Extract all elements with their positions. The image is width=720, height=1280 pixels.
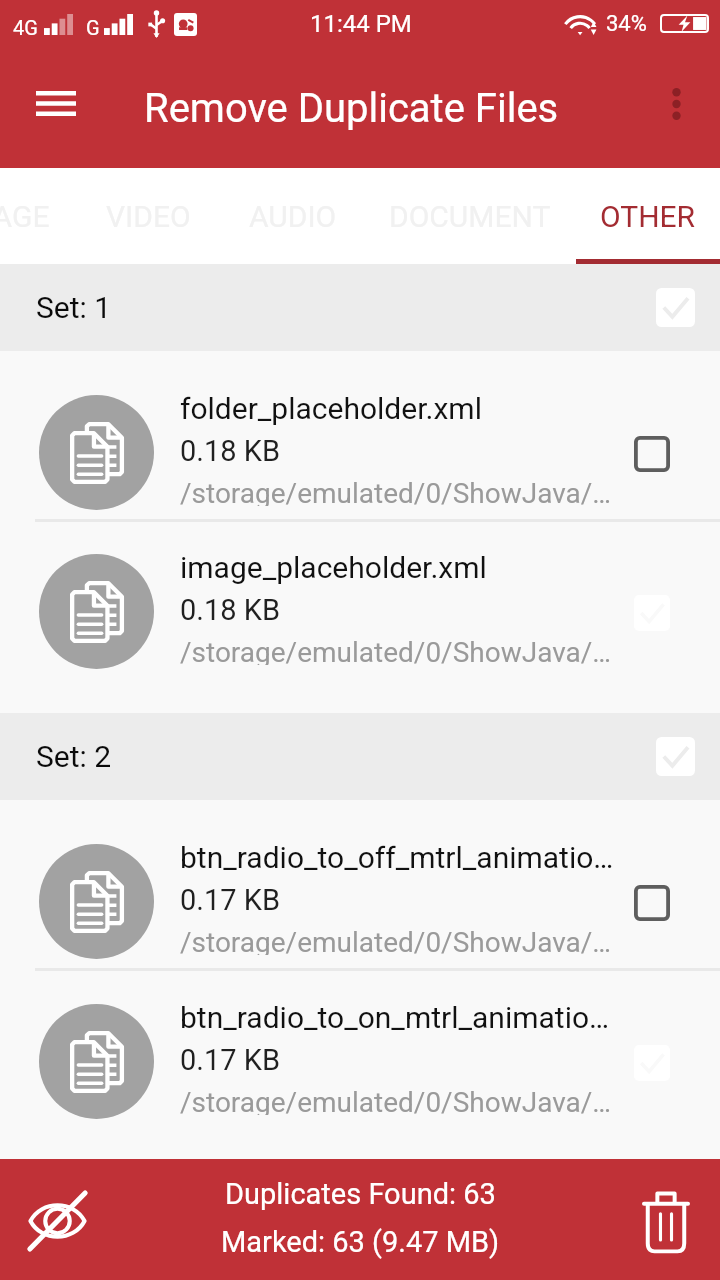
staticText: Set: 2 — [36, 739, 112, 774]
button[interactable]: Open navigation menu — [20, 52, 92, 168]
button[interactable]: Delete — [610, 1159, 715, 1280]
button[interactable]: Set: 2 — [0, 713, 720, 800]
staticText: /storage/emulated/0/ShowJava/… — [180, 636, 612, 665]
staticText: 0.17 KB — [180, 883, 280, 917]
staticText: Duplicates Found: 63 — [225, 1177, 496, 1211]
staticText: 34% — [606, 11, 647, 37]
staticText: OTHER — [600, 199, 696, 234]
staticText: DOCUMENT — [389, 199, 551, 234]
button[interactable]: image_placeholder.xml — [0, 554, 720, 669]
button[interactable]: btn_radio_to_off_mtrl_animatio… — [0, 844, 720, 959]
staticText: image_placeholder.xml — [180, 550, 487, 585]
button[interactable]: Hide — [5, 1159, 115, 1280]
staticText: IMAGE — [0, 199, 50, 234]
staticText: 0.18 KB — [180, 593, 280, 627]
staticText: btn_radio_to_on_mtrl_animatio… — [180, 1000, 610, 1035]
button[interactable]: folder_placeholder.xml — [0, 395, 720, 510]
staticText: Marked: 63 (9.47 MB) — [221, 1225, 500, 1259]
button[interactable]: Select all in set — [656, 737, 695, 776]
staticText: /storage/emulated/0/ShowJava/… — [180, 1086, 612, 1115]
staticText: /storage/emulated/0/ShowJava/… — [180, 477, 612, 506]
button[interactable]: btn_radio_to_on_mtrl_animatio… — [0, 1004, 720, 1119]
staticText: btn_radio_to_off_mtrl_animatio… — [180, 840, 614, 875]
staticText: AUDIO — [249, 199, 337, 234]
staticText: 4G — [13, 16, 38, 39]
staticText: Set: 1 — [36, 290, 112, 325]
button[interactable]: Select file — [634, 885, 670, 921]
staticText: Remove Duplicate Files — [144, 85, 559, 132]
button[interactable]: Select all in set — [656, 288, 695, 327]
button[interactable] — [576, 168, 720, 264]
staticText: /storage/emulated/0/ShowJava/… — [180, 926, 612, 955]
button[interactable] — [358, 168, 576, 264]
button[interactable]: More options — [640, 52, 712, 168]
staticText: 11:44 PM — [310, 10, 412, 38]
staticText: VIDEO — [106, 199, 191, 234]
staticText: G — [86, 16, 100, 39]
staticText: 0.17 KB — [180, 1043, 280, 1077]
button[interactable]: Select file — [634, 436, 670, 472]
button[interactable]: Set: 1 — [0, 264, 720, 351]
button[interactable] — [0, 168, 62, 264]
staticText: 0.18 KB — [180, 434, 280, 468]
staticText: folder_placeholder.xml — [180, 391, 482, 426]
